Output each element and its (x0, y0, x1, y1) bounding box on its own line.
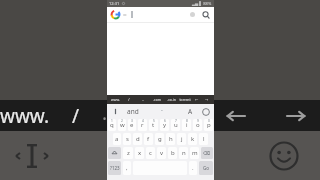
button[interactable]: j (177, 133, 186, 145)
button[interactable]: k (188, 133, 197, 145)
button[interactable]: Emoji (200, 106, 211, 117)
staticText: c (149, 149, 152, 157)
button[interactable]: a (113, 133, 121, 145)
button[interactable]: h (166, 133, 175, 145)
button[interactable]: d (133, 133, 142, 145)
button[interactable]: m (190, 147, 199, 159)
button[interactable]: ?123 (108, 161, 121, 175)
staticText: h (169, 135, 173, 143)
button[interactable]: www. (109, 95, 122, 104)
button[interactable]: v (157, 147, 166, 159)
staticText: · (161, 106, 163, 116)
staticText: b (171, 149, 175, 157)
staticText: 0 (208, 119, 210, 123)
button[interactable]: · (161, 106, 163, 116)
staticText: j (181, 135, 183, 143)
button[interactable]: n (179, 147, 188, 159)
staticText: s (126, 135, 129, 143)
staticText: A (190, 139, 207, 174)
button[interactable]: . (189, 161, 197, 175)
staticText: 5 (153, 119, 155, 123)
staticText: / (72, 103, 80, 129)
button[interactable]: Voice search (188, 10, 197, 19)
staticText: a (115, 135, 119, 143)
button[interactable]: g (155, 133, 164, 145)
button[interactable]: Previous (192, 95, 202, 104)
button[interactable]: 0 (204, 119, 213, 131)
staticText: 3 (131, 119, 133, 123)
button[interactable]: 1 (108, 119, 116, 131)
button[interactable]: 3 (128, 119, 136, 131)
staticText: www. (111, 97, 120, 102)
button[interactable]: Previous (218, 100, 254, 131)
button[interactable]: b (168, 147, 177, 159)
button[interactable]: www. (0, 100, 108, 131)
button[interactable]: Next (202, 95, 212, 104)
staticText: → (205, 97, 209, 102)
button[interactable]: Next (278, 100, 314, 131)
button[interactable]: z (123, 147, 133, 159)
staticText: u (174, 121, 178, 129)
button[interactable]: 6 (160, 119, 169, 131)
staticText: . (192, 164, 194, 172)
staticText: n (182, 149, 186, 157)
staticText: and (110, 137, 161, 175)
staticText: ?123 (110, 165, 120, 171)
staticText: t (152, 121, 155, 129)
staticText: x (138, 149, 142, 157)
button[interactable]: A (185, 106, 196, 117)
button[interactable]: Go (199, 161, 213, 175)
staticText: .. (102, 100, 108, 131)
button[interactable]: l (199, 133, 208, 145)
button[interactable]: s (123, 133, 131, 145)
button[interactable]: torrent (178, 95, 192, 104)
button[interactable]: f (144, 133, 153, 145)
staticText: 12:31 (109, 1, 120, 6)
button[interactable]: .com (150, 95, 164, 104)
staticText: .com (153, 97, 161, 102)
button[interactable]: Backspace (201, 147, 213, 159)
button[interactable]: 7 (171, 119, 180, 131)
button[interactable]: / (122, 95, 136, 104)
button[interactable]: x (135, 147, 144, 159)
staticText: y (163, 121, 167, 129)
button[interactable]: 4 (138, 119, 147, 131)
button[interactable]: and (127, 107, 139, 116)
button[interactable]: , (123, 161, 131, 175)
staticText: 9 (197, 119, 199, 123)
button[interactable]: Text cursor (12, 136, 52, 176)
button[interactable]: c (146, 147, 155, 159)
button[interactable]: 5 (149, 119, 158, 131)
staticText: w (120, 121, 125, 129)
staticText: l (203, 135, 205, 143)
staticText: e (130, 121, 134, 129)
staticText: f (147, 135, 150, 143)
staticText: 4 (142, 119, 144, 123)
button[interactable]: Emoji (262, 134, 306, 178)
button[interactable]: A (176, 134, 220, 178)
button[interactable]: Shift (108, 147, 121, 159)
button[interactable]: 8 (182, 119, 191, 131)
button[interactable]: Text cursor (110, 106, 120, 116)
staticText: g (158, 135, 162, 143)
staticText: v (160, 149, 164, 157)
button[interactable]: Voice search (107, 7, 214, 22)
button[interactable]: .. (136, 95, 150, 104)
button[interactable]: and (110, 137, 161, 175)
staticText: A (188, 107, 193, 116)
staticText: m (192, 149, 198, 157)
staticText: ⌫ (203, 150, 211, 156)
button[interactable]: rent (139, 100, 176, 131)
staticText: ▂▄ ▌ 88% (192, 1, 212, 6)
button[interactable]: 9 (193, 119, 202, 131)
button[interactable]: Search (200, 9, 211, 20)
button[interactable]: 2 (118, 119, 126, 131)
button[interactable]: .co.in (164, 95, 178, 104)
staticText: 7 (175, 119, 177, 123)
staticText: www. (0, 103, 50, 129)
staticText: 1 (111, 119, 113, 123)
staticText: q (110, 121, 114, 129)
staticText: rent (139, 103, 176, 129)
staticText: torrent (179, 97, 191, 102)
